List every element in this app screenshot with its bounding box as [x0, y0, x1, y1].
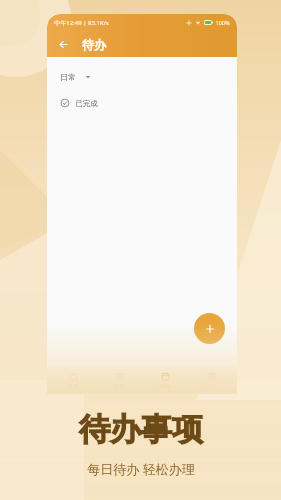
button[interactable]: 时钟 — [99, 366, 139, 394]
staticText: 待办事项 — [79, 410, 203, 449]
button[interactable]: 待办 — [145, 366, 185, 394]
staticText: 已完成 — [75, 99, 98, 108]
button[interactable]: 首页 — [53, 366, 93, 394]
staticText: 日常 — [60, 72, 76, 82]
button[interactable]: 日常 — [58, 69, 93, 85]
button[interactable]: 已完成 — [58, 96, 100, 110]
staticText: 待办 — [160, 383, 170, 389]
button[interactable]: Back — [52, 33, 74, 55]
staticText: 每日待办 轻松办理 — [87, 460, 195, 478]
button[interactable]: Add to-do — [194, 313, 225, 344]
button[interactable]: 便签 — [191, 366, 231, 394]
staticText: 100% — [215, 19, 230, 26]
staticText: 中午12:49 | 83.1K/s — [54, 19, 109, 27]
staticText: 待办 — [82, 37, 106, 52]
